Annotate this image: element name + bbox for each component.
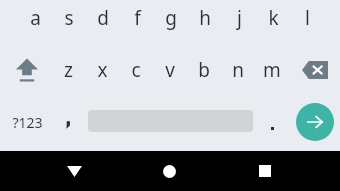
button[interactable]: m bbox=[255, 47, 289, 93]
staticText: x bbox=[97, 57, 108, 83]
staticText: f bbox=[134, 5, 141, 31]
staticText: d bbox=[97, 5, 109, 31]
staticText: k bbox=[268, 5, 279, 31]
button[interactable]: Back bbox=[50, 151, 98, 191]
staticText: v bbox=[165, 57, 175, 83]
staticText: l bbox=[305, 5, 310, 31]
staticText: m bbox=[263, 57, 281, 83]
button[interactable] bbox=[53, 101, 83, 143]
button[interactable]: l bbox=[290, 0, 324, 41]
button[interactable]: d bbox=[86, 0, 120, 41]
staticText: z bbox=[64, 57, 73, 83]
button[interactable]: Shift bbox=[10, 47, 44, 93]
button[interactable]: Backspace bbox=[298, 47, 332, 93]
button[interactable]: k bbox=[256, 0, 290, 41]
staticText: s bbox=[64, 5, 74, 31]
button[interactable]: s bbox=[52, 0, 86, 41]
button[interactable]: x bbox=[85, 47, 119, 93]
staticText: g bbox=[165, 5, 177, 31]
button[interactable]: Enter bbox=[296, 103, 334, 141]
button[interactable]: j bbox=[222, 0, 256, 41]
staticText: h bbox=[199, 5, 211, 31]
button[interactable]: h bbox=[188, 0, 222, 41]
button[interactable]: n bbox=[221, 47, 255, 93]
button[interactable] bbox=[257, 101, 287, 143]
button[interactable]: a bbox=[18, 0, 52, 41]
staticText: ?123 bbox=[12, 113, 43, 132]
staticText: b bbox=[198, 57, 210, 83]
button[interactable]: Home bbox=[145, 151, 193, 191]
staticText: c bbox=[131, 57, 141, 83]
staticText: a bbox=[30, 5, 41, 31]
button[interactable]: f bbox=[120, 0, 154, 41]
button[interactable]: g bbox=[154, 0, 188, 41]
button[interactable]: ?123 bbox=[6, 101, 48, 143]
button[interactable]: z bbox=[51, 47, 85, 93]
button[interactable]: v bbox=[153, 47, 187, 93]
staticText: j bbox=[237, 5, 242, 31]
button[interactable]: b bbox=[187, 47, 221, 93]
button[interactable]: Recent apps bbox=[241, 151, 289, 191]
button[interactable]: c bbox=[119, 47, 153, 93]
staticText: n bbox=[232, 57, 244, 83]
